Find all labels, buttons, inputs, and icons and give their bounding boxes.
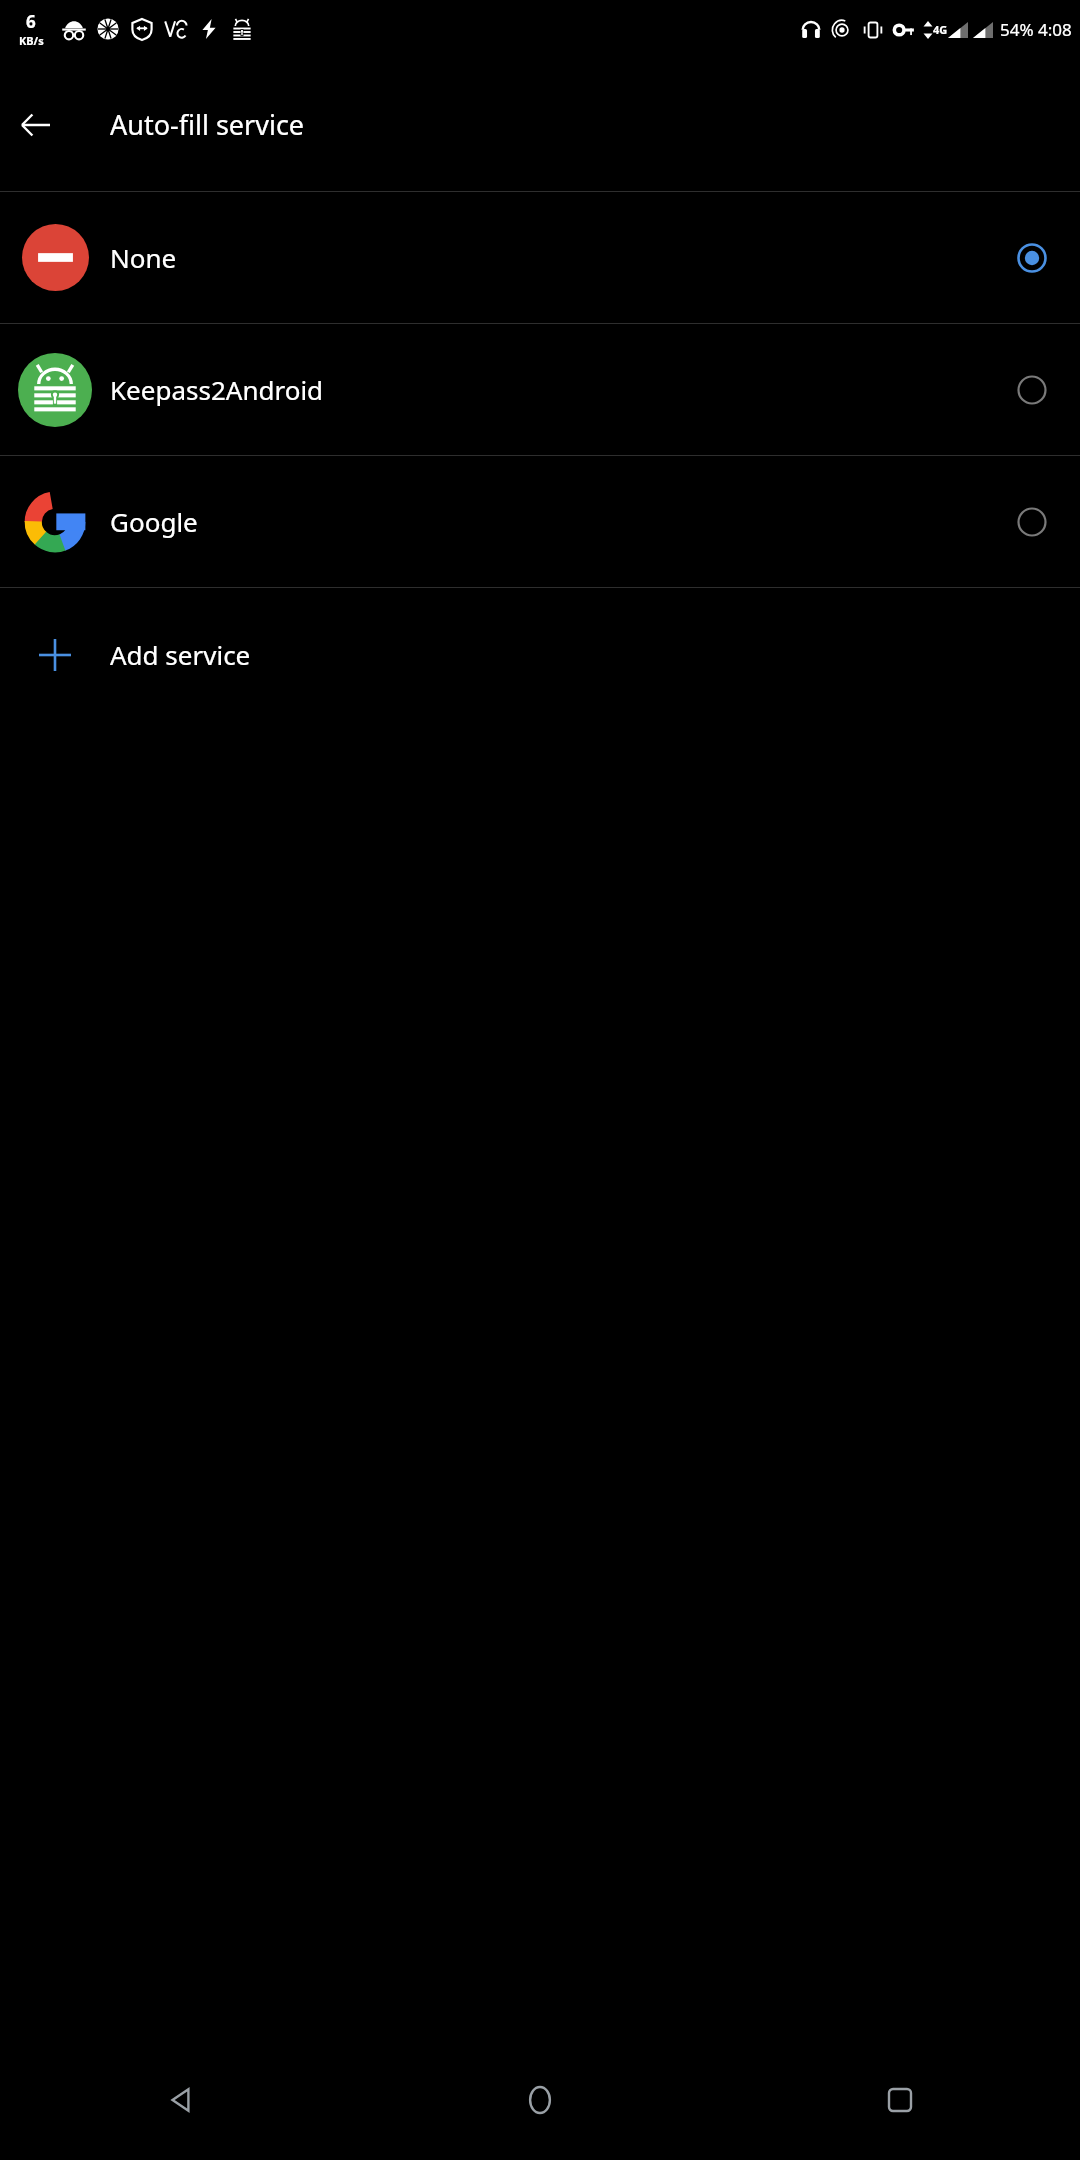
button[interactable]: Recent apps xyxy=(720,2040,1080,2160)
staticText: Keepass2Android xyxy=(110,372,1004,407)
button[interactable]: Back xyxy=(0,2040,360,2160)
staticText: 54% 4:08 xyxy=(1000,18,1072,41)
button[interactable]: Home xyxy=(360,2040,720,2160)
button[interactable]: Add service xyxy=(0,588,1080,721)
staticText: 4G xyxy=(933,22,948,37)
staticText: KB/s xyxy=(19,33,44,48)
staticText: Auto-fill service xyxy=(110,106,305,143)
button[interactable]: Back xyxy=(8,97,64,153)
staticText: Google xyxy=(110,504,1004,539)
button[interactable]: Keepass2Android xyxy=(0,324,1080,455)
staticText: None xyxy=(110,240,1004,275)
button[interactable]: Google xyxy=(0,456,1080,587)
staticText: 6 xyxy=(26,10,36,33)
button[interactable]: None xyxy=(0,192,1080,323)
staticText: Add service xyxy=(110,637,251,672)
